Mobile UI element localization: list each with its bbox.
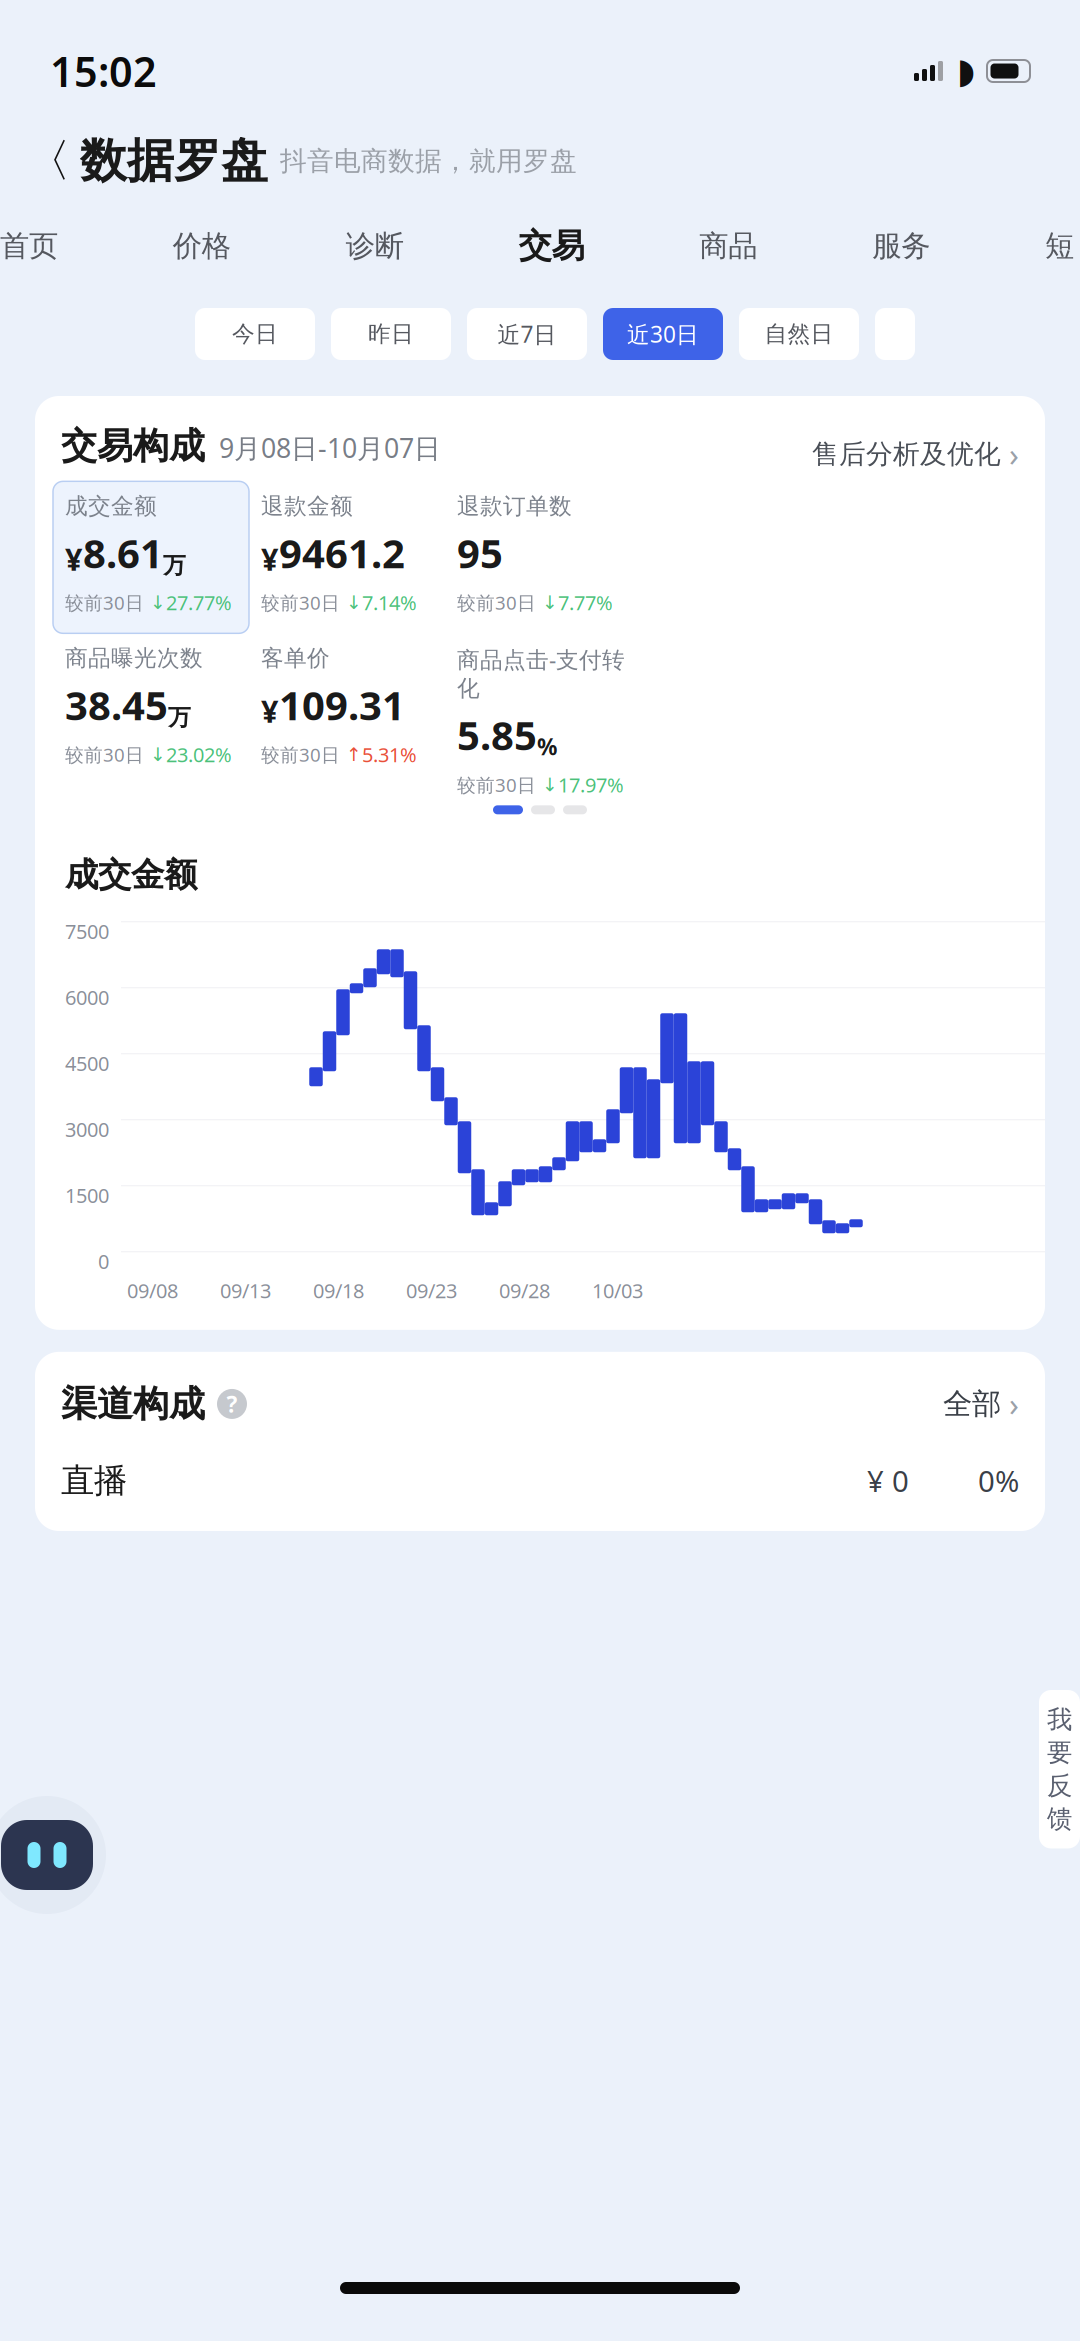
staticText: 09/13 xyxy=(220,1277,271,1304)
button[interactable]: 全部 xyxy=(943,1383,1019,1425)
button[interactable]: 返回 xyxy=(26,133,70,189)
staticText: 首页 xyxy=(0,228,58,264)
staticText: 8.61 xyxy=(83,526,163,579)
button[interactable]: 商品 xyxy=(699,222,757,270)
button[interactable]: 首页 xyxy=(0,222,58,270)
button[interactable]: 退款金额 xyxy=(249,481,445,633)
staticText: 109.31 xyxy=(279,678,405,731)
staticText: 成交金额 xyxy=(65,854,197,895)
staticText: 诊断 xyxy=(346,228,404,264)
staticText: 商品 xyxy=(699,228,757,264)
button[interactable]: 我 xyxy=(1039,1690,1080,1848)
button[interactable]: 短 xyxy=(1045,222,1074,270)
staticText: 万 xyxy=(163,551,186,579)
staticText: 万 xyxy=(168,703,191,731)
staticText: 商品曝光次数 xyxy=(65,644,203,672)
staticText: 较前30日 xyxy=(65,742,150,767)
staticText: 09/23 xyxy=(406,1277,457,1304)
staticText: ↓ xyxy=(150,744,166,765)
staticText: 交易 xyxy=(518,225,584,266)
staticText: 交易构成 xyxy=(61,424,205,468)
staticText: 渠道构成 xyxy=(61,1382,205,1426)
staticText: 较前30日 xyxy=(457,590,542,615)
staticText: 客单价 xyxy=(261,644,330,672)
button[interactable]: 自然日 xyxy=(739,308,859,360)
button[interactable]: 客单价 xyxy=(249,633,445,785)
staticText: 6000 xyxy=(65,984,109,1011)
staticText: 馈 xyxy=(1047,1803,1072,1834)
staticText: 09/28 xyxy=(499,1277,550,1304)
staticText: 全部 xyxy=(943,1386,1001,1422)
staticText: 7.77% xyxy=(558,589,613,616)
button[interactable]: 售后分析及优化 xyxy=(812,433,1019,475)
button[interactable]: 昨日 xyxy=(331,308,451,360)
button[interactable]: 近30日 xyxy=(603,308,723,360)
staticText: ↓ xyxy=(346,592,362,613)
staticText: 抖音电商数据，就用罗盘 xyxy=(280,145,577,177)
staticText: › xyxy=(1009,433,1019,475)
staticText: 短 xyxy=(1045,228,1074,264)
button[interactable]: 商品点击-支付转化 xyxy=(445,633,641,785)
staticText: 数据罗盘 xyxy=(80,132,268,190)
staticText: ↓ xyxy=(542,774,558,795)
staticText: 昨日 xyxy=(368,320,414,348)
staticText: 17.97% xyxy=(558,771,624,798)
staticText: ↓ xyxy=(542,592,558,613)
button[interactable]: 交易 xyxy=(518,222,584,270)
staticText: 27.77% xyxy=(166,589,232,616)
staticText: 近7日 xyxy=(497,319,556,349)
staticText: 5.31% xyxy=(362,741,417,768)
staticText: 4500 xyxy=(65,1050,109,1077)
staticText: 23.02% xyxy=(166,741,232,768)
staticText: ↑ xyxy=(346,744,362,765)
staticText: 09/08 xyxy=(127,1277,178,1304)
staticText: 商品点击-支付转化 xyxy=(457,644,625,702)
staticText: ¥ xyxy=(261,691,279,731)
staticText: 〈 xyxy=(25,133,70,189)
staticText: 售后分析及优化 xyxy=(812,438,1001,470)
staticText: ¥ 0 xyxy=(867,1461,909,1500)
button[interactable]: 诊断 xyxy=(346,222,404,270)
button[interactable]: 说明 xyxy=(217,1389,247,1419)
staticText: 15:02 xyxy=(50,44,157,98)
button[interactable]: 成交金额 xyxy=(53,481,249,633)
staticText: › xyxy=(1009,1383,1019,1425)
staticText: 较前30日 xyxy=(457,772,542,797)
staticText: 0 xyxy=(98,1248,109,1275)
staticText: 10/03 xyxy=(592,1277,643,1304)
button[interactable]: 退款订单数 xyxy=(445,481,641,633)
staticText: ↓ xyxy=(150,592,166,613)
staticText: 较前30日 xyxy=(261,590,346,615)
staticText: ¥ xyxy=(261,539,279,579)
staticText: ? xyxy=(226,1389,237,1419)
button[interactable]: 商品曝光次数 xyxy=(53,633,249,785)
staticText: 95 xyxy=(457,526,503,579)
staticText: 0% xyxy=(978,1461,1019,1500)
staticText: 7500 xyxy=(65,918,109,945)
staticText: 7.14% xyxy=(362,589,417,616)
staticText: 9461.2 xyxy=(279,526,405,579)
staticText: 38.45 xyxy=(65,678,168,731)
staticText: 退款金额 xyxy=(261,492,353,520)
staticText: 退款订单数 xyxy=(457,492,572,520)
staticText: 我 xyxy=(1047,1704,1072,1735)
button[interactable]: 今日 xyxy=(195,308,315,360)
button[interactable]: 价格 xyxy=(173,222,231,270)
staticText: 服务 xyxy=(872,228,930,264)
staticText: 价格 xyxy=(173,228,231,264)
staticText: 反 xyxy=(1047,1770,1072,1801)
staticText: 较前30日 xyxy=(65,590,150,615)
staticText: % xyxy=(537,731,557,761)
staticText: 3000 xyxy=(65,1116,109,1143)
staticText: 09/18 xyxy=(313,1277,364,1304)
button[interactable]: 服务 xyxy=(872,222,930,270)
staticText: 5.85 xyxy=(457,708,537,761)
staticText: 1500 xyxy=(65,1182,109,1209)
staticText: 近30日 xyxy=(627,319,699,349)
staticText: 今日 xyxy=(232,320,278,348)
staticText: 9月08日-10月07日 xyxy=(219,430,441,465)
button[interactable]: 近7日 xyxy=(467,308,587,360)
staticText: 自然日 xyxy=(764,320,833,348)
staticText: 直播 xyxy=(61,1460,127,1501)
staticText: ◗ xyxy=(957,51,975,91)
